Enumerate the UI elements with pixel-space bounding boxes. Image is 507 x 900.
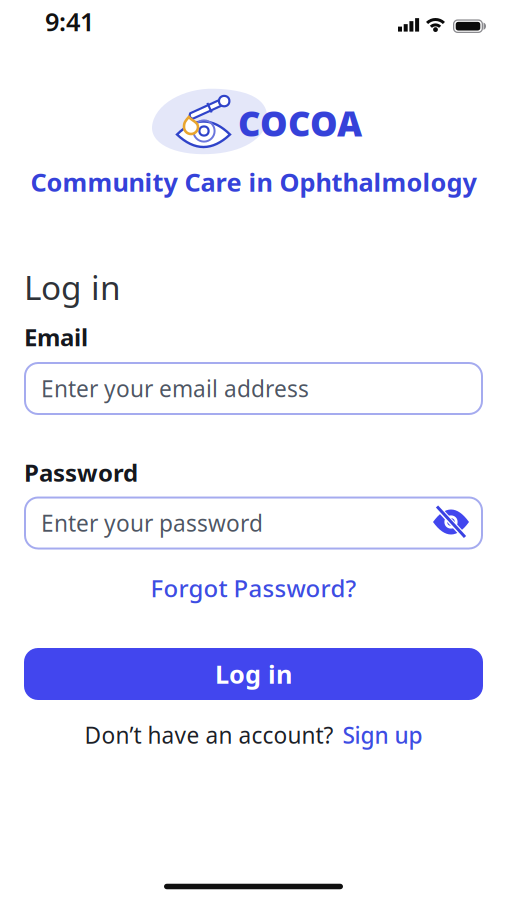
staticText: Sign up (342, 720, 422, 750)
staticText: Email (24, 321, 88, 353)
button[interactable]: Password (24, 496, 483, 549)
staticText: Enter your password (41, 508, 263, 538)
button[interactable]: Show password (432, 505, 470, 539)
staticText: COCOA (238, 100, 362, 146)
staticText: Log in (215, 657, 292, 691)
button[interactable]: Email (24, 362, 483, 415)
staticText: Community Care in Ophthalmology (30, 165, 476, 199)
button[interactable]: Log in (24, 648, 483, 700)
button[interactable]: Forgot Password? (150, 572, 356, 604)
staticText: Password (24, 457, 138, 488)
staticText: Don’t have an account? (84, 720, 333, 750)
staticText: Log in (24, 265, 121, 309)
staticText: 9:41 (45, 5, 94, 38)
staticText: Forgot Password? (150, 572, 356, 604)
staticText: Enter your email address (41, 373, 309, 403)
button[interactable]: Sign up (342, 720, 422, 750)
